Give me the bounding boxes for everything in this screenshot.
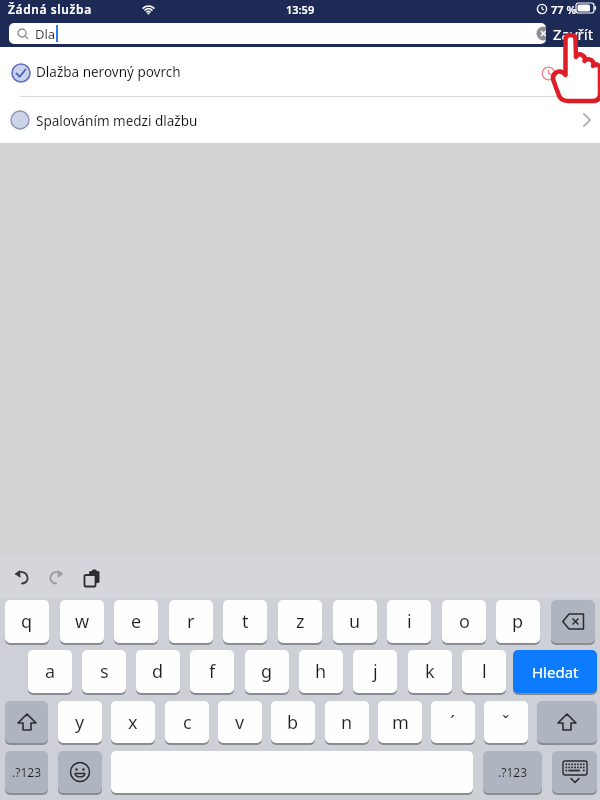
staticText: ˇ bbox=[502, 710, 510, 735]
staticText: w bbox=[75, 609, 90, 634]
staticText: c bbox=[183, 710, 192, 735]
button[interactable]: x bbox=[111, 701, 155, 743]
button[interactable]: i bbox=[387, 600, 431, 643]
staticText: i bbox=[407, 609, 412, 634]
staticText: Dlažba nerovný povrch bbox=[36, 63, 181, 81]
button[interactable]: c bbox=[165, 701, 209, 743]
staticText: t bbox=[242, 609, 249, 634]
staticText: a bbox=[45, 659, 56, 684]
button[interactable]: a bbox=[28, 650, 72, 693]
staticText: b bbox=[287, 710, 299, 735]
staticText: p bbox=[512, 609, 524, 634]
staticText: 13:59 bbox=[286, 2, 315, 17]
staticText: x bbox=[128, 710, 138, 735]
button[interactable] bbox=[537, 701, 597, 743]
button[interactable]: s bbox=[82, 650, 126, 693]
button[interactable]: m bbox=[378, 701, 422, 743]
button[interactable]: y bbox=[58, 701, 102, 743]
staticText: o bbox=[459, 609, 470, 634]
staticText: Spalováním medzi dlažbu bbox=[36, 112, 198, 130]
staticText: Dla bbox=[35, 25, 56, 43]
staticText: v bbox=[235, 710, 245, 735]
button[interactable]: f bbox=[190, 650, 234, 693]
staticText: h bbox=[315, 659, 327, 684]
button[interactable]: Dla bbox=[9, 23, 546, 44]
button[interactable]: h bbox=[299, 650, 343, 693]
staticText: d bbox=[152, 659, 164, 684]
button[interactable]: Dlažba nerovný povrch bbox=[0, 47, 600, 96]
staticText: l bbox=[482, 659, 487, 684]
button[interactable]: z bbox=[278, 600, 322, 643]
button[interactable]: Zavřít bbox=[550, 22, 596, 45]
button[interactable]: o bbox=[442, 600, 486, 643]
button[interactable]: .?123 bbox=[5, 751, 48, 793]
button[interactable]: q bbox=[5, 600, 49, 643]
button[interactable]: Hledat bbox=[513, 650, 597, 693]
staticText: r bbox=[187, 609, 195, 634]
staticText: n bbox=[341, 710, 353, 735]
staticText: 77 % bbox=[551, 2, 577, 17]
staticText: Hledat bbox=[532, 662, 579, 682]
button[interactable]: j bbox=[353, 650, 397, 693]
button[interactable]: .?123 bbox=[483, 751, 542, 793]
button[interactable]: d bbox=[136, 650, 180, 693]
button[interactable] bbox=[58, 751, 102, 793]
button[interactable] bbox=[84, 569, 101, 587]
button[interactable]: b bbox=[271, 701, 315, 743]
staticText: Žádná služba bbox=[8, 1, 92, 17]
staticText: g bbox=[261, 659, 273, 684]
staticText: j bbox=[373, 659, 378, 684]
button[interactable]: g bbox=[245, 650, 289, 693]
staticText: Zavřít bbox=[553, 24, 594, 44]
staticText: y bbox=[75, 710, 85, 735]
button[interactable]: v bbox=[218, 701, 262, 743]
button[interactable]: u bbox=[333, 600, 377, 643]
staticText: f bbox=[209, 659, 216, 684]
staticText: .?123 bbox=[12, 764, 42, 780]
button[interactable]: e bbox=[114, 600, 158, 643]
button[interactable]: l bbox=[462, 650, 506, 693]
staticText: z bbox=[296, 609, 305, 634]
button[interactable]: w bbox=[60, 600, 104, 643]
button[interactable] bbox=[48, 569, 66, 585]
staticText: k bbox=[425, 659, 435, 684]
button[interactable]: p bbox=[496, 600, 540, 643]
button[interactable] bbox=[5, 701, 48, 743]
staticText: m bbox=[392, 710, 409, 735]
button[interactable]: ´ bbox=[431, 701, 475, 743]
button[interactable] bbox=[552, 751, 597, 793]
staticText: q bbox=[21, 609, 33, 634]
button[interactable]: ˇ bbox=[484, 701, 528, 743]
button[interactable]: n bbox=[325, 701, 369, 743]
staticText: u bbox=[349, 609, 361, 634]
button[interactable] bbox=[551, 600, 595, 643]
button[interactable]: k bbox=[408, 650, 452, 693]
button[interactable] bbox=[12, 569, 30, 585]
button[interactable]: Spalováním medzi dlažbu bbox=[0, 97, 600, 143]
staticText: s bbox=[100, 659, 109, 684]
staticText: ´ bbox=[450, 710, 456, 735]
staticText: e bbox=[131, 609, 142, 634]
button[interactable]: t bbox=[223, 600, 267, 643]
staticText: .?123 bbox=[498, 764, 528, 780]
button[interactable]: r bbox=[169, 600, 213, 643]
